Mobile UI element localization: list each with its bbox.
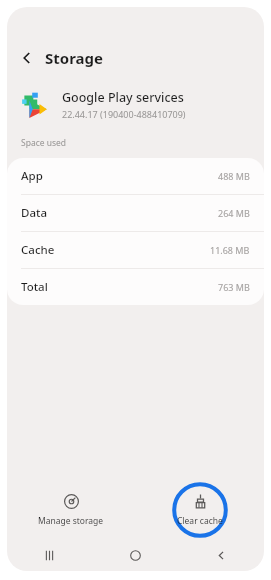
staticText: Space used <box>21 137 67 149</box>
staticText: 22.44.17 (190400-488410709) <box>62 108 186 120</box>
button[interactable]: Manage storage <box>7 494 135 527</box>
staticText: Google Play services <box>62 89 184 106</box>
staticText: 11.68 MB <box>210 244 250 256</box>
staticText: Cache <box>21 242 55 258</box>
staticText: Clear cache <box>177 515 223 527</box>
button[interactable]: Data <box>7 195 264 232</box>
staticText: Total <box>21 279 48 295</box>
staticText: 763 MB <box>218 281 250 293</box>
button[interactable]: Recent apps <box>7 549 92 562</box>
button[interactable]: Cache <box>7 232 264 269</box>
staticText: 264 MB <box>218 207 250 219</box>
button[interactable]: App <box>7 158 264 195</box>
button[interactable]: Back <box>178 549 264 562</box>
staticText: Data <box>21 205 47 221</box>
button[interactable]: Home <box>92 549 178 562</box>
staticText: Manage storage <box>38 515 104 527</box>
staticText: App <box>21 168 43 184</box>
button[interactable]: Back <box>13 44 41 72</box>
staticText: Storage <box>45 48 103 68</box>
button[interactable]: Clear cache <box>135 482 264 538</box>
button[interactable]: Total <box>7 269 264 305</box>
staticText: 488 MB <box>218 170 250 182</box>
